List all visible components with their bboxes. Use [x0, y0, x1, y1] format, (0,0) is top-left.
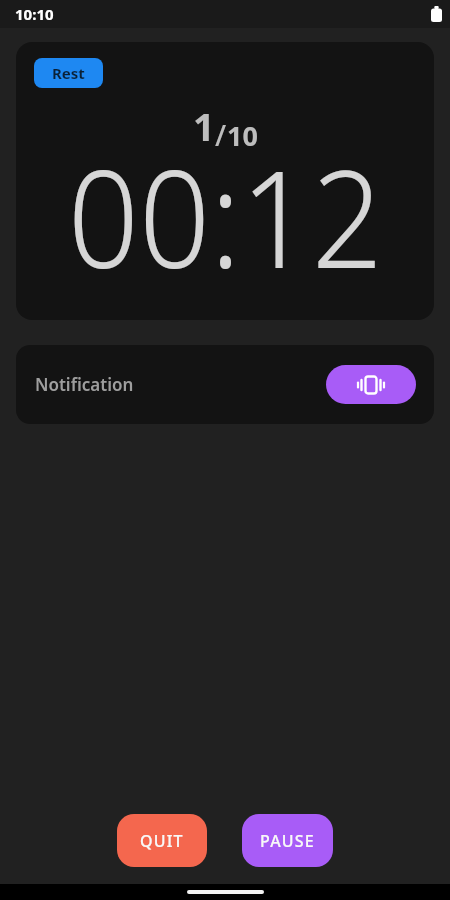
staticText: 10 — [227, 117, 258, 154]
staticText: 1 — [193, 100, 215, 152]
staticText: 10:10 — [15, 4, 54, 24]
staticText: Rest — [52, 63, 85, 83]
staticText: PAUSE — [260, 830, 315, 852]
staticText: / — [215, 115, 227, 154]
staticText: 00:12 — [68, 125, 383, 291]
button[interactable]: QUIT — [117, 814, 207, 867]
staticText: Notification — [35, 373, 134, 396]
button[interactable] — [326, 365, 416, 404]
button[interactable]: PAUSE — [242, 814, 333, 867]
staticText: QUIT — [140, 830, 184, 852]
button[interactable]: Rest — [34, 58, 103, 88]
